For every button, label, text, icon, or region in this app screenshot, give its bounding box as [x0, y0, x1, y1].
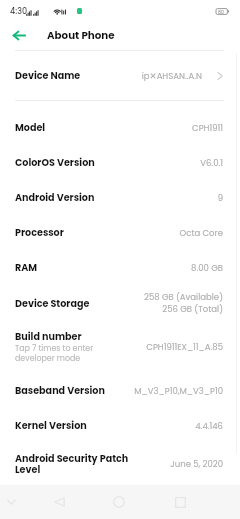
- button[interactable]: Recents: [168, 485, 192, 519]
- button[interactable]: Device Storage: [0, 285, 240, 321]
- button[interactable]: Processor: [0, 215, 240, 250]
- button[interactable]: Android Security Patch Level: [0, 443, 240, 485]
- button[interactable]: ColorOS Version: [0, 145, 240, 180]
- staticText: ip✕AHSAN..A.N: [141, 70, 202, 82]
- staticText: Baseband Version: [15, 384, 105, 397]
- staticText: Device Storage: [15, 297, 90, 310]
- staticText: Processor: [15, 226, 64, 239]
- staticText: 258 GB (Available): [144, 291, 223, 303]
- button[interactable]: Home: [107, 485, 131, 519]
- staticText: 4.4.146: [195, 420, 223, 432]
- staticText: Build number: [15, 330, 82, 343]
- staticText: About Phone: [47, 28, 115, 42]
- staticText: 256 GB (Total): [162, 303, 223, 315]
- staticText: Device Name: [15, 69, 81, 82]
- staticText: Model: [15, 121, 46, 134]
- staticText: M_V3_P10,M_V3_P10: [134, 385, 223, 397]
- button[interactable]: Android Version: [0, 180, 240, 215]
- staticText: June 5, 2020: [170, 458, 223, 470]
- button[interactable]: RAM: [0, 250, 240, 285]
- button[interactable]: Kernel Version: [0, 408, 240, 443]
- staticText: ColorOS Version: [15, 156, 95, 169]
- staticText: Android Version: [15, 191, 95, 204]
- staticText: Tap 7 times to enter developer mode: [15, 343, 94, 364]
- staticText: CPH1911EX_11_A.85: [146, 341, 223, 353]
- staticText: CPH1911: [192, 122, 223, 134]
- button[interactable]: Device Name: [0, 51, 240, 100]
- staticText: Octa Core: [179, 227, 223, 239]
- button[interactable]: Build number: [0, 321, 240, 373]
- button[interactable]: Model: [0, 110, 240, 145]
- staticText: 4:30: [10, 6, 28, 17]
- staticText: Android Security Patch Level: [15, 452, 129, 476]
- staticText: RAM: [15, 261, 38, 274]
- staticText: Kernel Version: [15, 419, 87, 432]
- button[interactable]: Back: [8, 20, 30, 50]
- staticText: 9: [217, 192, 223, 204]
- button[interactable]: Baseband Version: [0, 373, 240, 408]
- staticText: 80: [218, 9, 224, 15]
- staticText: V6.0.1: [200, 157, 223, 169]
- staticText: 8.00 GB: [191, 262, 223, 274]
